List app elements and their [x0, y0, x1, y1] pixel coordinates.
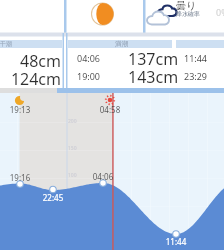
- staticText: 124cm: [0, 68, 61, 90]
- staticText: 04:06: [91, 171, 115, 182]
- staticText: 200: [68, 118, 77, 125]
- staticText: 150: [68, 145, 77, 152]
- staticText: 19:16: [8, 172, 32, 183]
- staticText: 0%: [216, 6, 224, 18]
- staticText: 137cm: [128, 48, 179, 70]
- staticText: 22:45: [41, 192, 65, 203]
- staticText: 満潮: [115, 40, 128, 48]
- button[interactable]: Tide chart: [0, 93, 224, 250]
- button[interactable]: [67, 33, 224, 88]
- staticText: 11:44: [164, 236, 188, 247]
- button[interactable]: [0, 33, 63, 88]
- staticText: 04:58: [98, 104, 122, 115]
- button[interactable]: Moon phase: [88, 0, 143, 33]
- staticText: 143cm: [128, 66, 179, 88]
- staticText: 04:06: [77, 52, 101, 64]
- staticText: 11:44: [184, 52, 208, 64]
- staticText: 23:29: [184, 70, 208, 82]
- staticText: 曇り: [176, 0, 197, 12]
- staticText: 48cm: [0, 50, 61, 72]
- staticText: 100: [68, 172, 77, 179]
- staticText: 19:00: [77, 70, 101, 82]
- staticText: 19:13: [8, 104, 32, 115]
- staticText: 干潮: [0, 40, 12, 48]
- button[interactable]: Weather: [146, 0, 224, 33]
- staticText: 降水確率: [176, 10, 200, 18]
